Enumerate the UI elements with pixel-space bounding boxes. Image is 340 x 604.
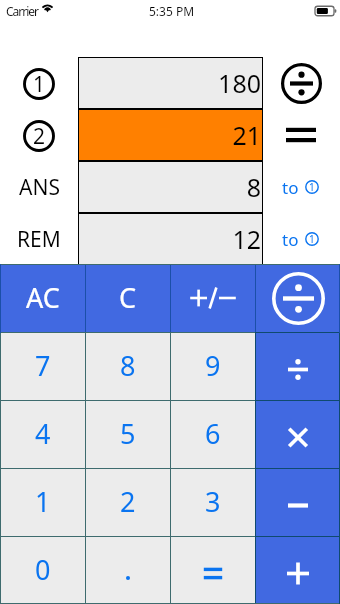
staticText: 1 <box>35 483 51 520</box>
staticText: 9 <box>205 347 221 384</box>
staticText: 1 <box>309 180 315 194</box>
staticText: to <box>282 176 299 199</box>
button[interactable]: AC <box>0 264 85 332</box>
staticText: 5 <box>120 415 136 452</box>
staticText: 8 <box>246 170 261 204</box>
staticText: 12 <box>232 222 261 256</box>
button[interactable]: Divide <box>279 61 323 105</box>
button[interactable]: 6 <box>171 400 255 468</box>
staticText: REM <box>17 225 61 254</box>
button[interactable]: C <box>86 264 170 332</box>
button[interactable]: 21 <box>79 110 262 160</box>
button[interactable]: 0 <box>0 536 85 604</box>
button[interactable]: Subtract <box>256 468 340 536</box>
staticText: 8 <box>120 347 136 384</box>
staticText: to <box>282 228 299 251</box>
button[interactable]: 4 <box>0 400 85 468</box>
staticText: 7 <box>35 347 51 384</box>
staticText: 0 <box>35 551 51 588</box>
button[interactable]: Equals <box>171 536 255 604</box>
staticText: AC <box>26 279 60 316</box>
staticText: 2 <box>120 483 136 520</box>
button[interactable]: 9 <box>171 332 255 400</box>
button[interactable]: Divide <box>256 264 340 332</box>
button[interactable]: Decimal point <box>86 536 170 604</box>
button[interactable]: Plus minus <box>171 264 255 332</box>
staticText: 1 <box>309 232 315 246</box>
button[interactable]: 8 <box>79 162 262 212</box>
staticText: 4 <box>35 415 51 452</box>
button[interactable]: Divide <box>256 332 340 400</box>
staticText: Carrier <box>6 3 39 19</box>
staticText: 3 <box>205 483 221 520</box>
staticText: 21 <box>232 118 261 152</box>
button[interactable]: 7 <box>0 332 85 400</box>
staticText: 6 <box>205 415 221 452</box>
button[interactable]: Multiply <box>256 400 340 468</box>
button[interactable]: to <box>279 172 323 202</box>
button[interactable]: to <box>279 224 323 254</box>
staticText: C <box>119 279 137 316</box>
button[interactable]: 3 <box>171 468 255 536</box>
button[interactable]: Equals <box>279 113 323 157</box>
button[interactable]: 180 <box>79 58 262 108</box>
button[interactable]: 5 <box>86 400 170 468</box>
staticText: 2 <box>33 122 46 151</box>
staticText: 1 <box>33 70 46 99</box>
staticText: ANS <box>19 173 60 202</box>
button[interactable]: 12 <box>79 214 262 264</box>
button[interactable]: 2 <box>86 468 170 536</box>
staticText: 5:35 PM <box>149 3 195 19</box>
button[interactable]: 1 <box>0 468 85 536</box>
staticText: 180 <box>218 66 261 100</box>
button[interactable]: Add <box>256 536 340 604</box>
button[interactable]: 8 <box>86 332 170 400</box>
